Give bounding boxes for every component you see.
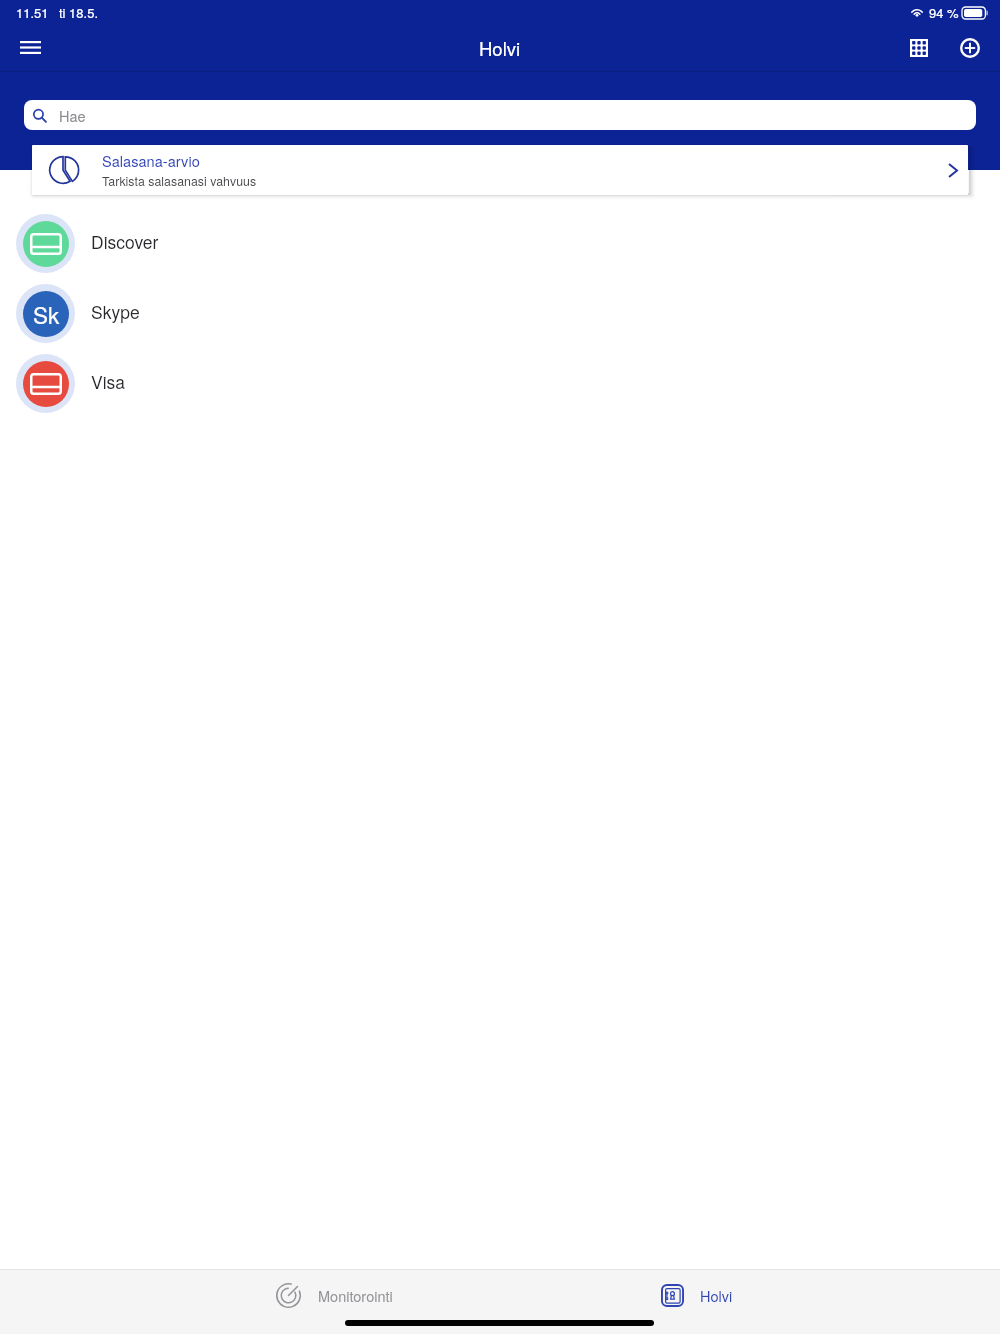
staticText: Sk	[33, 298, 60, 330]
staticText: Tarkista salasanasi vahvuus	[102, 172, 257, 190]
staticText: Discover	[91, 229, 159, 254]
staticText: Holvi	[700, 1285, 733, 1306]
staticText: Skype	[91, 299, 140, 324]
button[interactable]: Monitorointi	[276, 1275, 393, 1315]
button[interactable]: Holvi	[661, 1275, 733, 1315]
staticText: 11.51	[16, 3, 49, 22]
button[interactable]: Open navigation menu	[10, 27, 51, 68]
staticText: 94 %	[929, 3, 959, 22]
button[interactable]: Visa	[0, 348, 1000, 418]
staticText: Salasana-arvio	[102, 150, 200, 171]
staticText: Hae	[59, 105, 86, 126]
button[interactable]: Discover	[0, 208, 1000, 278]
button[interactable]: Hae	[24, 100, 976, 130]
button[interactable]: Sk	[0, 278, 1000, 348]
staticText: Visa	[91, 369, 126, 394]
button[interactable]: Salasana-arvio	[32, 145, 968, 195]
staticText: Holvi	[479, 35, 521, 61]
staticText: ti 18.5.	[59, 3, 99, 22]
staticText: Monitorointi	[318, 1285, 393, 1306]
button[interactable]: Switch view	[898, 27, 939, 68]
button[interactable]: Add item	[949, 27, 990, 68]
